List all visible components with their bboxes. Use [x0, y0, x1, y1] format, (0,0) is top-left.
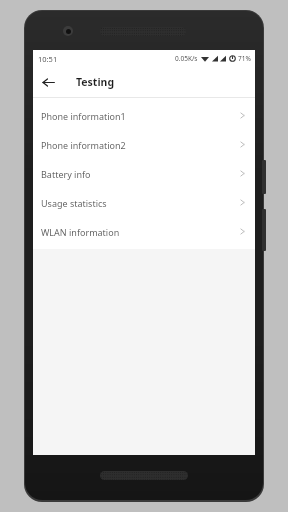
button[interactable]: Phone information2: [33, 130, 255, 159]
button[interactable]: WLAN information: [33, 217, 255, 246]
staticText: 0.05K/s: [175, 54, 198, 63]
button[interactable]: Phone information1: [33, 101, 255, 130]
button[interactable]: Back: [33, 67, 63, 97]
button[interactable]: Battery info: [33, 159, 255, 188]
staticText: WLAN information: [41, 226, 120, 238]
staticText: Testing: [76, 75, 115, 89]
staticText: Usage statistics: [41, 197, 107, 209]
button[interactable]: Usage statistics: [33, 188, 255, 217]
staticText: Battery info: [41, 168, 91, 180]
staticText: 71%: [238, 54, 251, 63]
staticText: 10:51: [38, 54, 58, 64]
staticText: Phone information1: [41, 110, 126, 122]
staticText: Phone information2: [41, 139, 126, 151]
